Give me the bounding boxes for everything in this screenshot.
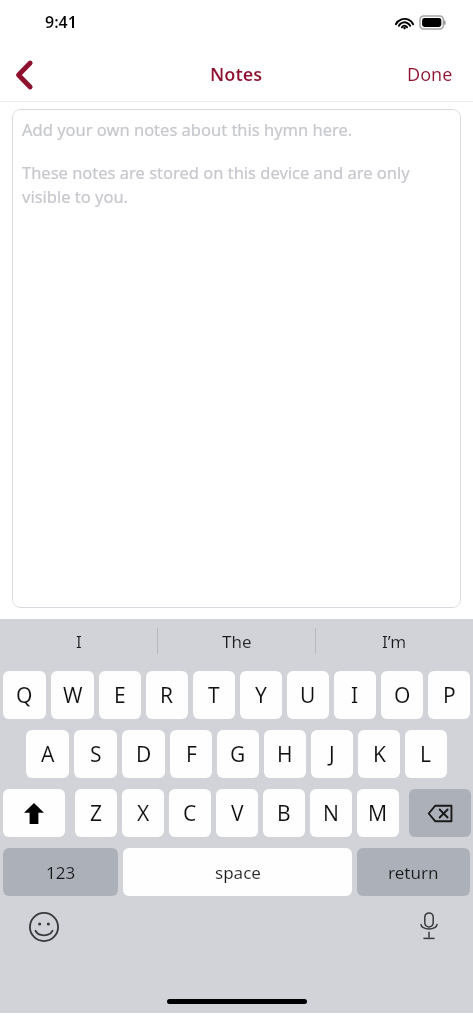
staticText: Y	[255, 681, 267, 710]
staticText: space	[215, 861, 261, 884]
button[interactable]: Add your own notes about this hymn here.	[12, 109, 461, 608]
staticText: E	[114, 681, 126, 710]
button[interactable]: I	[334, 671, 376, 719]
button[interactable]: I	[0, 619, 157, 663]
button[interactable]: W	[51, 671, 94, 719]
button[interactable]: 123	[3, 848, 118, 896]
button[interactable]: G	[217, 730, 259, 778]
staticText: N	[323, 799, 339, 828]
button[interactable]: U	[287, 671, 329, 719]
button[interactable]: K	[358, 730, 400, 778]
staticText: V	[231, 799, 244, 828]
staticText: T	[208, 681, 220, 710]
button[interactable]: B	[263, 789, 305, 837]
staticText: Z	[90, 799, 103, 828]
button[interactable]: Emoji	[25, 908, 63, 946]
staticText: W	[63, 681, 83, 710]
staticText: F	[186, 740, 197, 769]
button[interactable]: L	[405, 730, 447, 778]
staticText: O	[394, 681, 411, 710]
button[interactable]: Shift	[3, 789, 65, 837]
staticText: R	[160, 681, 174, 710]
staticText: P	[443, 681, 456, 710]
staticText: I	[76, 630, 82, 653]
button[interactable]: M	[357, 789, 399, 837]
staticText: A	[41, 740, 55, 769]
button[interactable]: return	[357, 848, 470, 896]
staticText: Q	[16, 681, 33, 710]
staticText: I	[351, 681, 359, 710]
staticText: D	[136, 740, 152, 769]
button[interactable]: Z	[75, 789, 117, 837]
staticText: return	[388, 861, 439, 884]
staticText: L	[420, 740, 432, 769]
button[interactable]: O	[381, 671, 423, 719]
staticText: J	[329, 740, 335, 769]
button[interactable]: space	[123, 848, 352, 896]
button[interactable]: S	[74, 730, 117, 778]
staticText: 9:41	[45, 11, 77, 33]
button[interactable]: X	[122, 789, 164, 837]
staticText: Add your own notes about this hymn here.	[22, 118, 353, 140]
button[interactable]: R	[146, 671, 188, 719]
staticText: B	[277, 799, 291, 828]
button[interactable]: Dictate	[410, 908, 448, 946]
button[interactable]: H	[264, 730, 306, 778]
staticText: X	[137, 799, 150, 828]
button[interactable]: Q	[3, 671, 46, 719]
button[interactable]: V	[216, 789, 258, 837]
button[interactable]: F	[170, 730, 212, 778]
button[interactable]: P	[428, 671, 470, 719]
staticText: 123	[46, 861, 76, 884]
button[interactable]: Backspace	[409, 789, 471, 837]
staticText: These notes are stored on this device an…	[22, 161, 453, 208]
staticText: C	[183, 799, 197, 828]
staticText: S	[90, 740, 102, 769]
button[interactable]: I’m	[316, 619, 473, 663]
staticText: Done	[407, 62, 453, 87]
button[interactable]: J	[311, 730, 353, 778]
staticText: M	[368, 799, 388, 828]
staticText: I’m	[382, 630, 407, 653]
staticText: G	[230, 740, 246, 769]
staticText: K	[373, 740, 386, 769]
button[interactable]: N	[310, 789, 352, 837]
staticText: H	[277, 740, 293, 769]
button[interactable]: T	[193, 671, 235, 719]
button[interactable]: D	[122, 730, 165, 778]
button[interactable]: E	[99, 671, 141, 719]
staticText: The	[222, 630, 252, 653]
button[interactable]: The	[158, 619, 315, 663]
button[interactable]: Y	[240, 671, 282, 719]
button[interactable]: Back	[0, 51, 48, 99]
staticText: Notes	[210, 62, 263, 87]
staticText: U	[300, 681, 316, 710]
button[interactable]: A	[26, 730, 69, 778]
button[interactable]: C	[169, 789, 211, 837]
button[interactable]: Done	[401, 56, 459, 93]
